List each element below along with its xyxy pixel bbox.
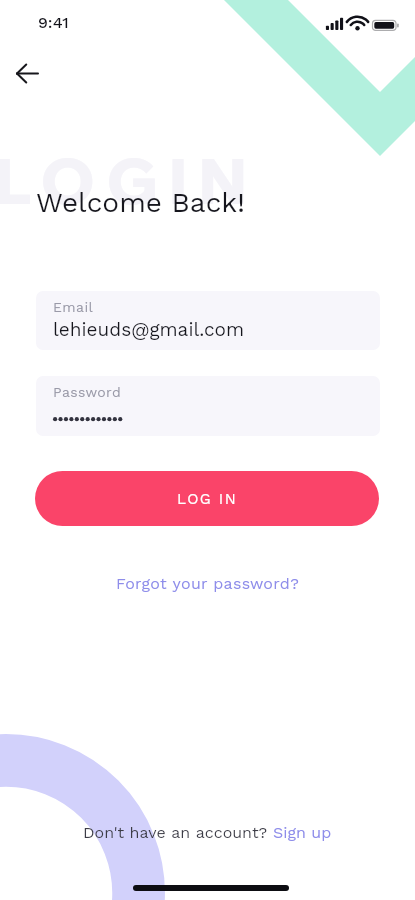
staticText: LOGIN (0, 140, 258, 219)
button[interactable]: Email (36, 291, 380, 350)
staticText: Don't have an account? (83, 823, 273, 842)
button[interactable]: Sign up (273, 823, 332, 842)
staticText: Email (53, 299, 94, 315)
button[interactable]: LOG IN (35, 471, 379, 526)
button[interactable]: Forgot your password? (106, 569, 310, 598)
button[interactable]: Password (36, 376, 380, 436)
staticText: Welcome Back! (36, 186, 245, 219)
staticText: Forgot your password? (116, 574, 300, 593)
staticText: Sign up (273, 823, 332, 842)
button[interactable]: Back (7, 53, 48, 94)
staticText: lehieuds@gmail.com (53, 318, 245, 340)
staticText: Password (53, 384, 122, 400)
staticText: LOG IN (177, 490, 238, 508)
staticText: 9:41 (38, 13, 69, 32)
